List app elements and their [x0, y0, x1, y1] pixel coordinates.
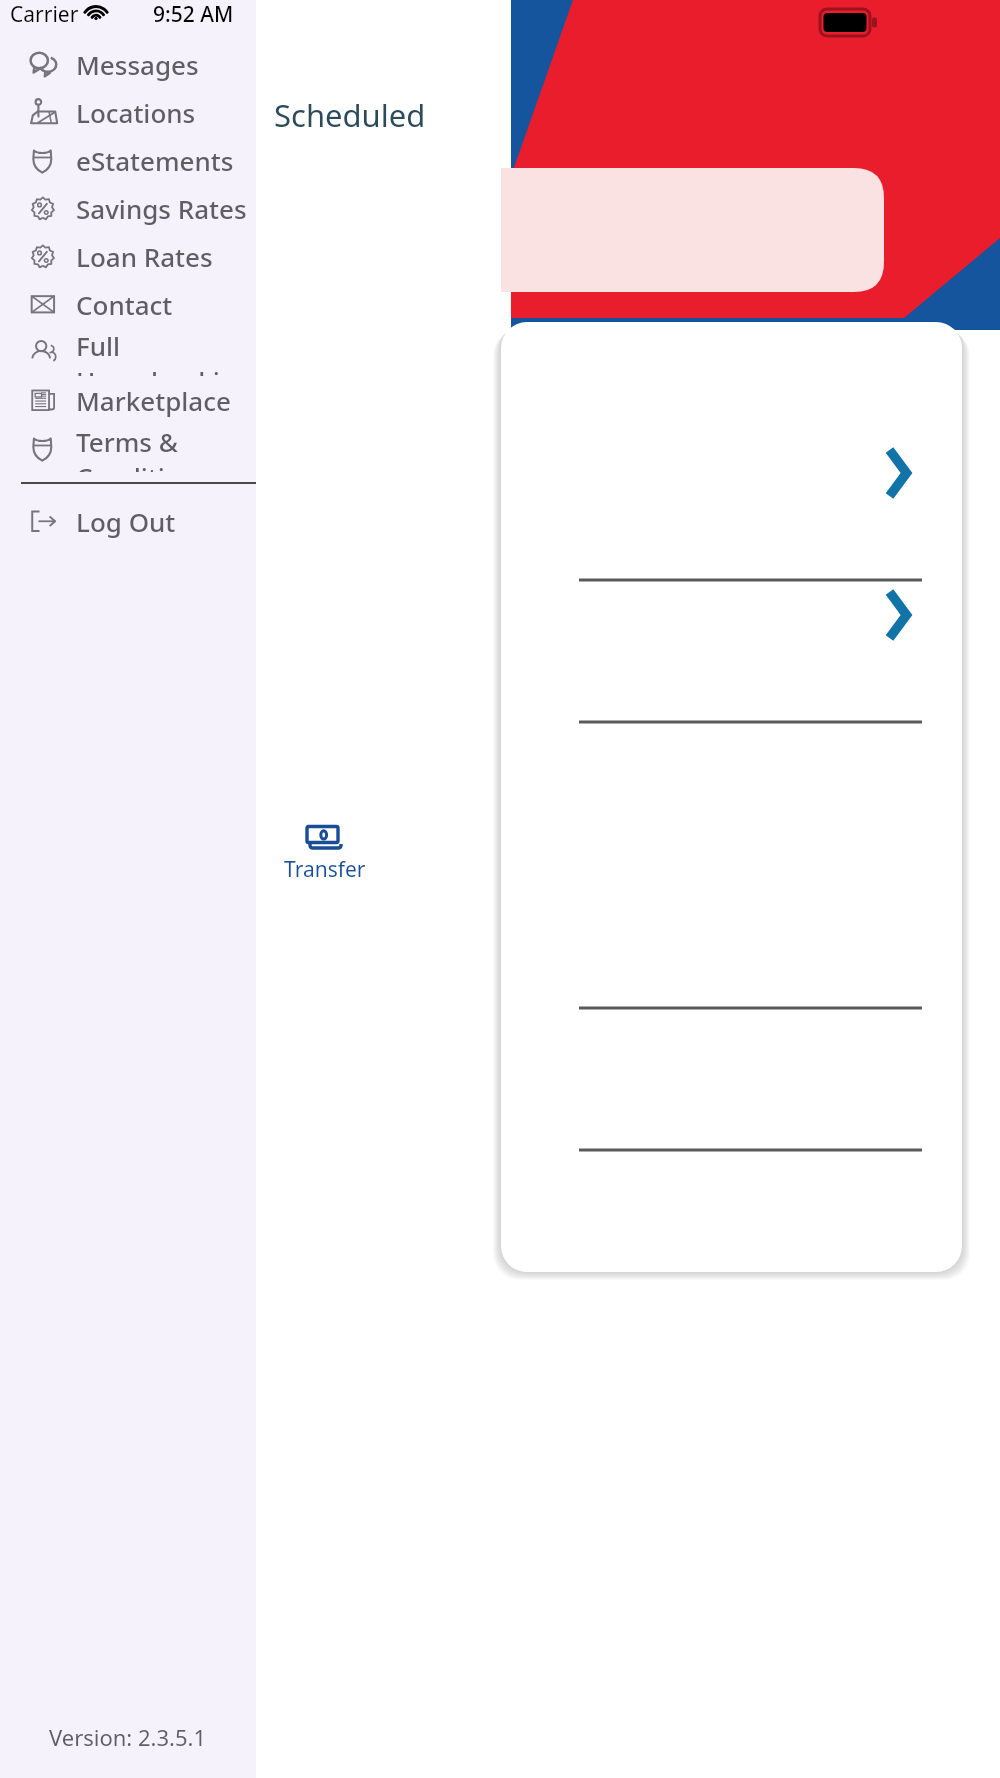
staticText: Scheduled: [274, 94, 426, 136]
button[interactable]: Loan Rates: [0, 232, 256, 280]
staticText: Marketplace: [76, 383, 231, 418]
staticText: Locations: [76, 95, 196, 130]
button[interactable]: Messages: [0, 40, 256, 88]
staticText: Log Out: [76, 504, 176, 539]
button[interactable]: Contact: [0, 280, 256, 328]
button[interactable]: Marketplace: [0, 376, 256, 424]
button[interactable]: Terms & Conditions: [0, 424, 256, 472]
staticText: Full Homebanking Site: [76, 328, 256, 376]
staticText: Savings Rates: [76, 191, 247, 226]
button[interactable]: Scheduled: [256, 84, 443, 146]
button[interactable]: Savings Rates: [0, 184, 256, 232]
button[interactable]: Log Out: [0, 497, 256, 545]
button[interactable]: eStatements: [0, 136, 256, 184]
staticText: Contact: [76, 287, 173, 322]
staticText: Messages: [76, 47, 199, 82]
button[interactable]: Full Homebanking Site: [0, 328, 256, 376]
button[interactable]: Transfer: [280, 820, 370, 885]
staticText: Version: 2.3.5.1: [49, 1722, 207, 1752]
staticText: eStatements: [76, 143, 234, 178]
staticText: 9:52 AM: [153, 0, 234, 24]
staticText: Transfer: [284, 855, 366, 884]
staticText: Terms & Conditions: [76, 424, 256, 472]
staticText: Loan Rates: [76, 239, 213, 274]
staticText: Carrier: [10, 0, 79, 24]
button[interactable]: Locations: [0, 88, 256, 136]
